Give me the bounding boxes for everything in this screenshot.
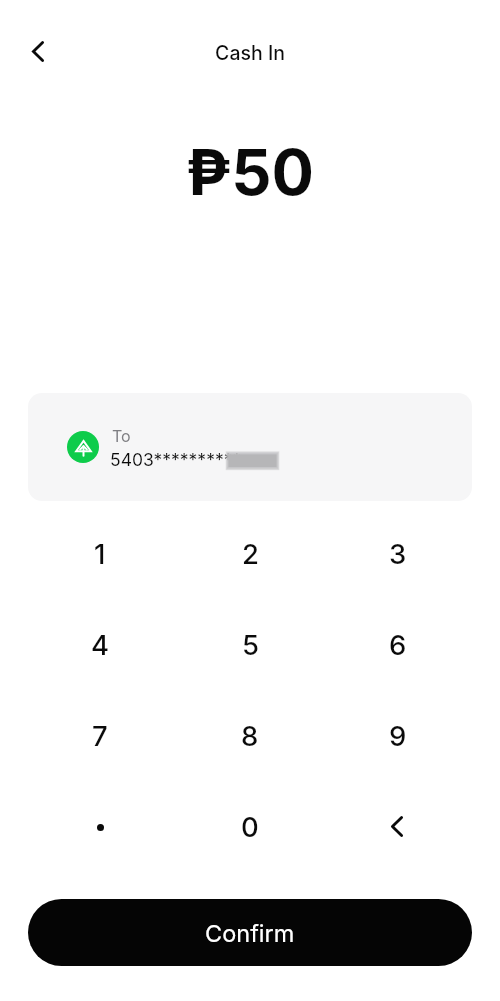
- button[interactable]: 5: [176, 599, 324, 689]
- button[interactable]: 8: [176, 690, 324, 780]
- staticText: 0: [241, 810, 259, 843]
- staticText: To: [112, 426, 131, 445]
- staticText: 1: [94, 537, 106, 570]
- button[interactable]: 7: [26, 690, 174, 780]
- button[interactable]: Confirm: [28, 899, 472, 966]
- staticText: Cash In: [0, 41, 500, 65]
- button[interactable]: Backspace: [323, 781, 471, 871]
- staticText: 6: [389, 628, 407, 661]
- staticText: 4: [91, 628, 110, 661]
- staticText: 9: [389, 719, 407, 752]
- button[interactable]: 4: [26, 599, 174, 689]
- button[interactable]: 6: [324, 599, 472, 689]
- button[interactable]: To: [28, 393, 472, 501]
- staticText: 8: [241, 719, 259, 752]
- staticText: 3: [389, 537, 407, 570]
- button[interactable]: 0: [176, 781, 324, 871]
- button[interactable]: 9: [324, 690, 472, 780]
- staticText: ₱50: [0, 134, 500, 210]
- button[interactable]: Back: [16, 29, 60, 73]
- staticText: 7: [92, 719, 108, 752]
- staticText: 5403**********: [110, 449, 242, 470]
- staticText: Confirm: [205, 919, 295, 947]
- button[interactable]: Decimal point: [26, 782, 174, 872]
- button[interactable]: 1: [26, 508, 174, 598]
- staticText: 5: [242, 628, 259, 661]
- button[interactable]: 2: [176, 508, 324, 598]
- staticText: 2: [242, 537, 259, 570]
- button[interactable]: 3: [324, 508, 472, 598]
